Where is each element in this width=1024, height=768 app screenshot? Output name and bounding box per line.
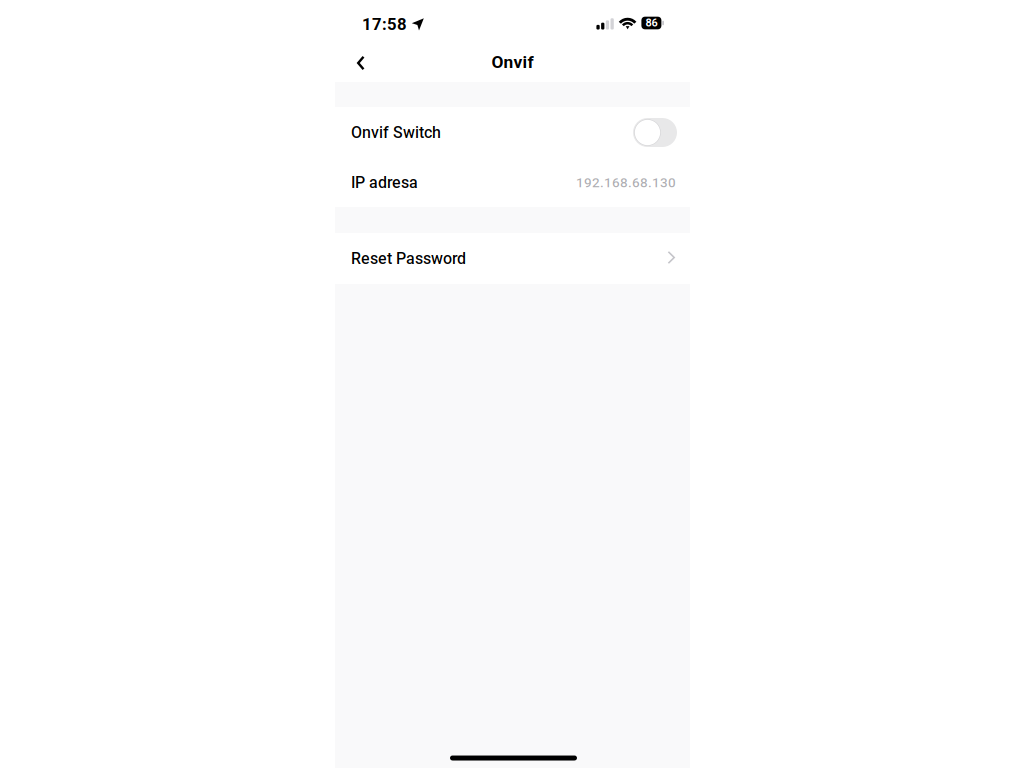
button[interactable]: Reset Password [335,233,690,284]
button[interactable]: Back [335,46,383,82]
button[interactable]: Onvif Switch [335,107,690,158]
staticText: 86 [645,16,657,29]
button[interactable]: IP adresa [335,158,690,207]
staticText: Onvif Switch [351,123,441,142]
staticText: IP adresa [351,173,418,192]
staticText: Onvif [491,52,533,72]
staticText: 192.168.68.130 [576,175,676,190]
staticText: Reset Password [351,249,466,268]
staticText: 17:58 [362,15,407,34]
